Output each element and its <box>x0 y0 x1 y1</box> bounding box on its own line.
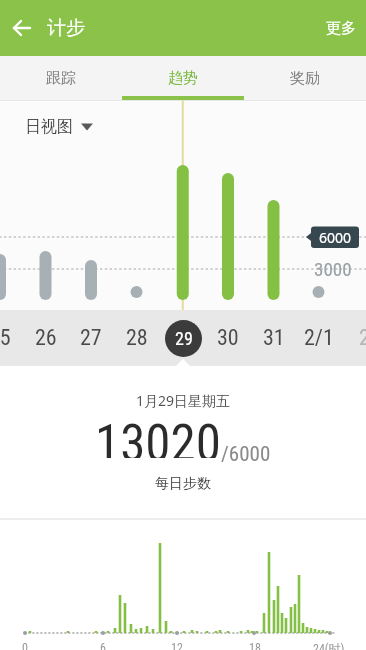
button[interactable]: 奖励 <box>244 56 366 100</box>
button[interactable]: 28 <box>115 310 159 366</box>
staticText: 31 <box>263 325 285 351</box>
staticText: 趋势 <box>168 69 198 88</box>
staticText: 计步 <box>47 16 85 40</box>
staticText: 6000 <box>319 228 352 247</box>
staticText: 每日步数 <box>155 475 211 493</box>
button[interactable]: 29 <box>161 310 205 366</box>
button[interactable]: 更多 <box>326 19 356 38</box>
staticText: 24(时) <box>313 641 345 650</box>
button[interactable]: 26 <box>24 310 68 366</box>
button[interactable]: 2/1 <box>297 310 341 366</box>
staticText: 18 <box>249 641 261 650</box>
staticText: 更多 <box>326 19 356 38</box>
staticText: 25 <box>0 325 11 351</box>
staticText: 3000 <box>314 258 352 280</box>
staticText: 2/1 <box>304 325 334 351</box>
button[interactable] <box>0 6 44 50</box>
staticText: 26 <box>35 325 57 351</box>
staticText: 日视图 <box>25 117 73 137</box>
staticText: 28 <box>126 325 148 351</box>
button[interactable]: 25 <box>0 310 22 366</box>
staticText: /6000 <box>221 442 271 467</box>
staticText: 1月29日星期五 <box>136 391 231 410</box>
button[interactable]: 2 <box>342 310 366 366</box>
button[interactable]: 31 <box>252 310 296 366</box>
staticText: 30 <box>217 325 239 351</box>
staticText: 奖励 <box>290 69 320 88</box>
staticText: 0 <box>22 641 28 650</box>
staticText: 27 <box>80 325 102 351</box>
staticText: 6 <box>100 641 106 650</box>
button[interactable]: 趋势 <box>122 56 244 100</box>
staticText: 29 <box>175 328 193 349</box>
button[interactable]: 27 <box>69 310 113 366</box>
staticText: 2 <box>359 325 366 351</box>
staticText: 13020 <box>95 414 221 458</box>
button[interactable]: 日视图 <box>25 117 93 137</box>
staticText: 12 <box>171 641 183 650</box>
button[interactable]: 跟踪 <box>0 56 122 100</box>
staticText: 跟踪 <box>46 69 76 88</box>
button[interactable]: 30 <box>206 310 250 366</box>
